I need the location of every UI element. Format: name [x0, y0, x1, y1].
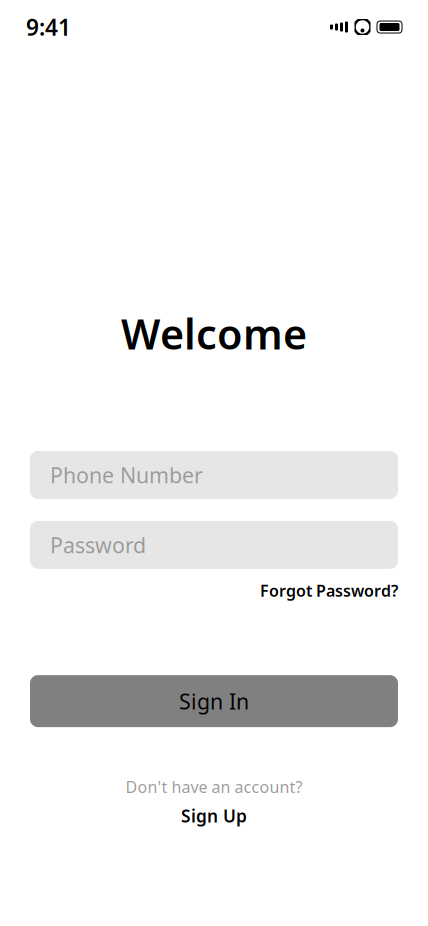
staticText: Don't have an account?	[125, 776, 302, 797]
button[interactable]: Password	[30, 521, 398, 569]
button[interactable]: Phone Number	[30, 451, 398, 499]
button[interactable]: Sign Up	[181, 804, 247, 827]
button[interactable]: Sign In	[30, 675, 398, 727]
staticText: Password	[50, 531, 146, 559]
staticText: Phone Number	[50, 461, 203, 489]
staticText: Forgot Password?	[260, 580, 398, 601]
staticText: Sign In	[179, 687, 249, 715]
button[interactable]: Forgot Password?	[260, 580, 398, 601]
staticText: 9:41	[26, 12, 71, 42]
staticText: Welcome	[121, 306, 307, 361]
staticText: Sign Up	[181, 804, 247, 827]
